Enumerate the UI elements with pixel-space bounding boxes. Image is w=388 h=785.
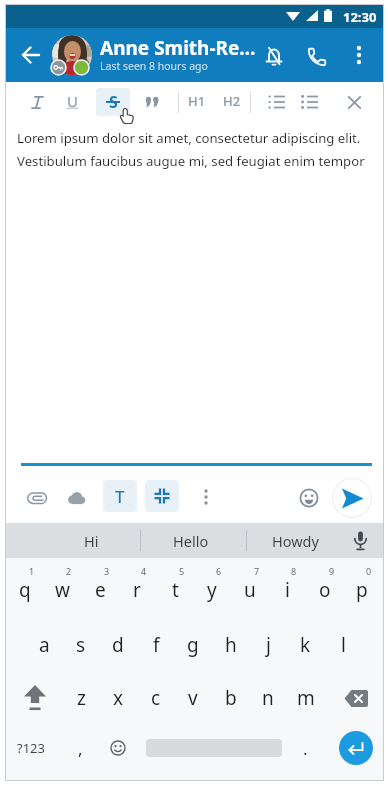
- staticText: a: [39, 632, 50, 658]
- button[interactable]: [140, 90, 164, 114]
- staticText: 12:30: [343, 8, 377, 25]
- button[interactable]: i: [268, 570, 306, 610]
- staticText: b: [225, 685, 237, 711]
- button[interactable]: [23, 484, 51, 512]
- button[interactable]: p: [343, 570, 381, 610]
- staticText: ?123: [17, 739, 45, 757]
- button[interactable]: [295, 484, 323, 512]
- button[interactable]: v: [174, 678, 212, 718]
- staticText: Last seen 8 hours ago: [100, 59, 208, 73]
- staticText: p: [356, 577, 368, 603]
- button[interactable]: [52, 35, 92, 75]
- staticText: ,: [78, 737, 83, 760]
- button[interactable]: [297, 90, 321, 114]
- button[interactable]: Howdy: [250, 523, 340, 558]
- staticText: d: [112, 632, 124, 658]
- button[interactable]: S: [96, 88, 130, 116]
- staticText: n: [262, 685, 274, 711]
- staticText: T: [115, 485, 125, 508]
- button[interactable]: [335, 678, 377, 718]
- button[interactable]: u: [231, 570, 269, 610]
- button[interactable]: [264, 90, 288, 114]
- button[interactable]: T: [103, 480, 137, 512]
- button[interactable]: Hi: [51, 523, 131, 558]
- staticText: Anne Smith-Re…: [100, 35, 256, 61]
- staticText: e: [95, 577, 106, 603]
- button[interactable]: f: [137, 625, 175, 665]
- button[interactable]: [15, 678, 55, 718]
- staticText: w: [55, 577, 70, 603]
- staticText: u: [244, 577, 256, 603]
- staticText: k: [300, 632, 311, 658]
- button[interactable]: [99, 730, 137, 766]
- button[interactable]: r: [118, 570, 156, 610]
- staticText: 5: [179, 565, 185, 577]
- staticText: 7: [254, 565, 260, 577]
- button[interactable]: k: [286, 625, 324, 665]
- button[interactable]: [262, 45, 286, 69]
- button[interactable]: n: [249, 678, 287, 718]
- button[interactable]: l: [324, 625, 362, 665]
- staticText: Howdy: [272, 531, 319, 551]
- button[interactable]: [347, 43, 371, 67]
- staticText: 4: [141, 565, 147, 577]
- button[interactable]: d: [99, 625, 137, 665]
- staticText: s: [76, 632, 86, 658]
- button[interactable]: b: [212, 678, 250, 718]
- button[interactable]: g: [174, 625, 212, 665]
- staticText: z: [77, 685, 86, 711]
- button[interactable]: Hello: [146, 523, 236, 558]
- button[interactable]: [193, 484, 219, 510]
- staticText: l: [341, 632, 346, 658]
- staticText: 6: [216, 565, 222, 577]
- button[interactable]: c: [137, 678, 175, 718]
- button[interactable]: q: [6, 570, 44, 610]
- button[interactable]: z: [62, 678, 100, 718]
- staticText: 8: [291, 565, 297, 577]
- button[interactable]: ,: [61, 728, 99, 768]
- staticText: U: [67, 91, 78, 111]
- staticText: 3: [104, 565, 110, 577]
- staticText: H1: [188, 92, 206, 110]
- staticText: Hello: [173, 531, 209, 551]
- staticText: 2: [66, 565, 72, 577]
- staticText: g: [187, 632, 199, 658]
- button[interactable]: [332, 478, 372, 518]
- button[interactable]: j: [249, 625, 287, 665]
- button[interactable]: h: [212, 625, 250, 665]
- button[interactable]: m: [287, 678, 325, 718]
- staticText: h: [225, 632, 237, 658]
- staticText: y: [207, 577, 217, 603]
- button[interactable]: w: [43, 570, 81, 610]
- button[interactable]: s: [62, 625, 100, 665]
- staticText: v: [188, 685, 198, 711]
- staticText: c: [151, 685, 161, 711]
- button[interactable]: [145, 480, 179, 512]
- button[interactable]: [346, 527, 374, 555]
- button[interactable]: [19, 43, 43, 67]
- button[interactable]: a: [25, 625, 63, 665]
- staticText: 1: [29, 565, 35, 577]
- staticText: i: [285, 577, 290, 603]
- button[interactable]: [305, 45, 329, 69]
- button[interactable]: x: [99, 678, 137, 718]
- staticText: o: [319, 577, 331, 603]
- button[interactable]: e: [81, 570, 119, 610]
- staticText: H2: [223, 92, 241, 110]
- staticText: Hi: [84, 531, 99, 551]
- button[interactable]: y: [193, 570, 231, 610]
- button[interactable]: [25, 90, 49, 114]
- button[interactable]: [339, 731, 373, 765]
- staticText: Lorem ipsum dolor sit amet, consectetur …: [17, 129, 365, 170]
- button[interactable]: [62, 484, 90, 512]
- button[interactable]: [342, 90, 366, 114]
- button[interactable]: t: [156, 570, 194, 610]
- staticText: m: [297, 685, 315, 711]
- staticText: j: [266, 632, 271, 658]
- button[interactable]: ?123: [10, 730, 52, 766]
- staticText: t: [172, 577, 179, 603]
- staticText: q: [19, 577, 31, 603]
- button[interactable]: o: [306, 570, 344, 610]
- button[interactable]: .: [286, 728, 324, 768]
